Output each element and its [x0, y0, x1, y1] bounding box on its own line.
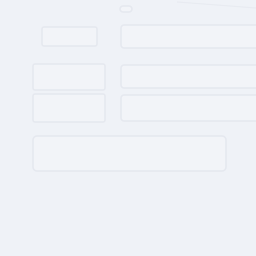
button[interactable]: Back [42, 27, 97, 46]
button[interactable]: Second field [121, 95, 256, 121]
button[interactable]: Search [121, 25, 256, 48]
button[interactable]: First field [121, 65, 256, 88]
